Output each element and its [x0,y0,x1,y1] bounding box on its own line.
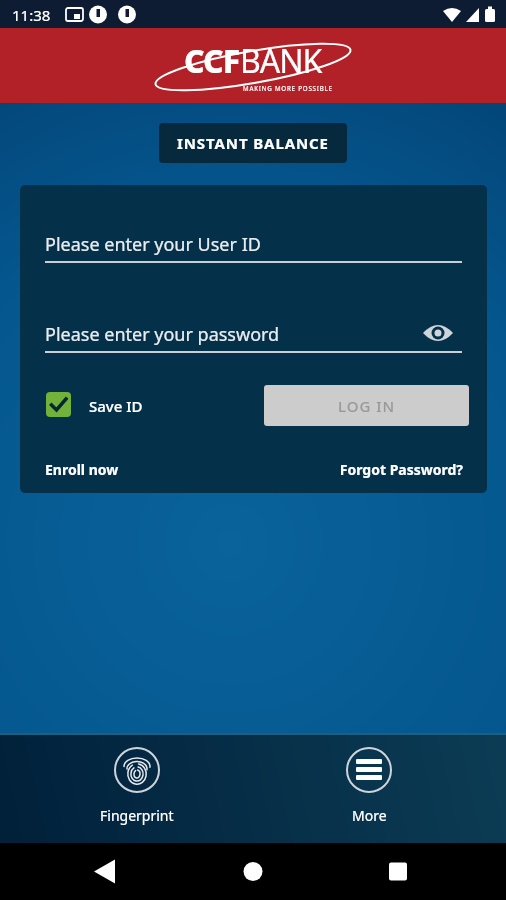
staticText: More [352,806,387,825]
staticText: LOG IN [338,396,396,416]
button[interactable] [76,851,132,892]
button[interactable]: LOG IN [264,385,469,426]
staticText: CCF [184,39,240,83]
staticText: INSTANT BALANCE [177,133,329,153]
staticText: MAKING MORE POSSIBLE [243,84,333,92]
staticText: 11:38 [12,5,51,25]
button[interactable]: INSTANT BALANCE [159,123,347,163]
staticText: Save ID [89,396,143,416]
staticText: BANK [240,39,322,83]
staticText: Fingerprint [100,806,174,825]
staticText: Forgot Password? [339,460,463,479]
button[interactable]: More [309,747,429,825]
button[interactable] [46,392,71,417]
button[interactable] [225,851,281,892]
button[interactable] [423,322,453,344]
button[interactable]: Fingerprint [77,747,197,825]
button[interactable]: Enroll now [45,460,119,479]
button[interactable] [370,851,426,892]
staticText: Please enter your password [45,322,280,347]
staticText: Please enter your User ID [45,232,261,257]
button[interactable]: Forgot Password? [323,460,463,479]
